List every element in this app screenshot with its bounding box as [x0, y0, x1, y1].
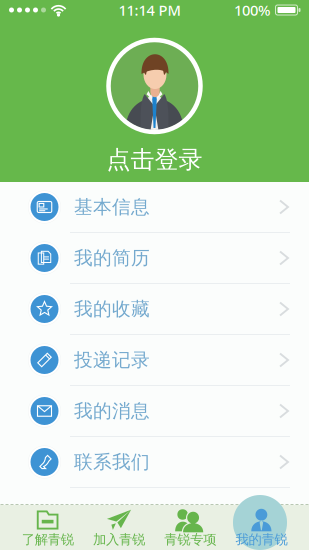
- staticText: 青锐专项: [164, 531, 216, 548]
- staticText: 100%: [234, 0, 270, 20]
- button[interactable]: 青锐专项: [154, 504, 226, 550]
- staticText: 了解青锐: [22, 531, 74, 548]
- button[interactable]: 我的青锐: [226, 504, 297, 550]
- button[interactable]: 了解青锐: [12, 504, 83, 550]
- staticText: 我的消息: [74, 399, 150, 422]
- button[interactable]: 我的消息: [0, 386, 309, 437]
- staticText: 11:14 PM: [118, 0, 180, 20]
- button[interactable]: 投递记录: [0, 335, 309, 386]
- staticText: 基本信息: [74, 195, 150, 218]
- button[interactable]: 联系我们: [0, 437, 309, 488]
- staticText: 我的收藏: [74, 297, 150, 320]
- staticText: 点击登录: [106, 145, 202, 174]
- button[interactable]: 点击登录: [106, 38, 202, 174]
- staticText: 联系我们: [74, 450, 150, 473]
- button[interactable]: 加入青锐: [83, 504, 154, 550]
- staticText: 我的青锐: [235, 531, 287, 548]
- button[interactable]: 基本信息: [0, 182, 309, 233]
- staticText: 我的简历: [74, 246, 150, 269]
- staticText: 投递记录: [74, 348, 150, 371]
- staticText: 加入青锐: [93, 531, 145, 548]
- button[interactable]: 我的简历: [0, 233, 309, 284]
- button[interactable]: 我的收藏: [0, 284, 309, 335]
